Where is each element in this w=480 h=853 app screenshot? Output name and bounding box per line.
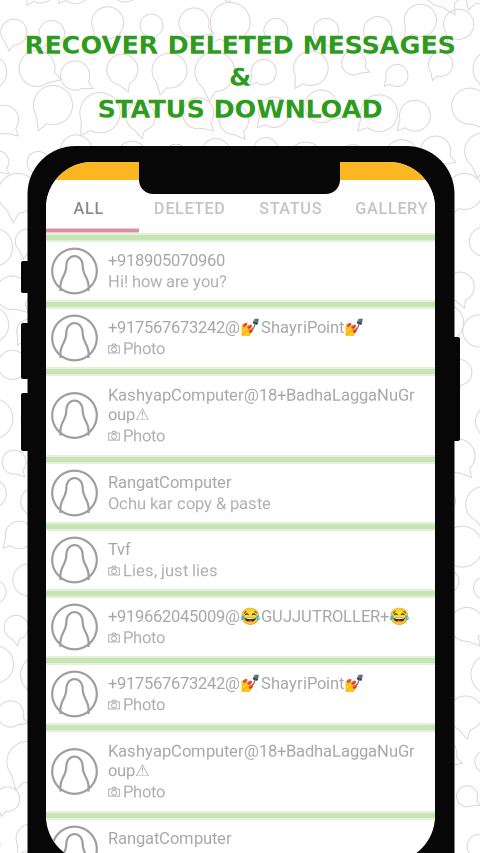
button[interactable]: DELETED	[139, 182, 240, 235]
staticText: Photo	[123, 695, 165, 714]
staticText: STATUS DOWNLOAD	[97, 94, 382, 124]
staticText: Photo	[123, 782, 165, 802]
staticText: Tvf	[108, 540, 131, 559]
staticText: KashyapComputer@18+BadhaLaggaNuGr oup⚠	[108, 385, 415, 424]
staticText: DELETED	[154, 199, 225, 218]
button[interactable]: +917567673242@💅ShayriPoint💅	[46, 665, 435, 732]
staticText: RangatComputer	[108, 473, 232, 492]
button[interactable]: +918905070960	[46, 242, 435, 309]
button[interactable]: KashyapComputer@18+BadhaLaggaNuGr oup⚠	[46, 376, 435, 464]
staticText: +918905070960	[108, 251, 225, 270]
staticText: RECOVER DELETED MESSAGES	[24, 30, 455, 60]
button[interactable]: RangatComputer	[46, 820, 435, 853]
staticText: Photo	[123, 628, 165, 647]
button[interactable]: KashyapComputer@18+BadhaLaggaNuGr oup⚠	[46, 732, 435, 820]
staticText: Photo	[123, 339, 165, 358]
staticText: +917567673242@💅ShayriPoint💅	[108, 318, 365, 337]
staticText: +919662045009@😂GUJJUTROLLER+😂	[108, 607, 410, 626]
button[interactable]: Tvf	[46, 531, 435, 598]
button[interactable]: +917567673242@💅ShayriPoint💅	[46, 309, 435, 376]
button[interactable]: RangatComputer	[46, 464, 435, 531]
staticText: KashyapComputer@18+BadhaLaggaNuGr oup⚠	[108, 741, 415, 780]
button[interactable]: ALL	[38, 182, 139, 235]
staticText: Photo	[123, 426, 165, 446]
staticText: GALLERY	[355, 199, 428, 218]
staticText: ALL	[73, 199, 104, 218]
staticText: RangatComputer	[108, 829, 232, 848]
staticText: Lies, just lies	[123, 561, 218, 580]
staticText: Ochu kar copy & paste	[108, 494, 271, 513]
button[interactable]: +919662045009@😂GUJJUTROLLER+😂	[46, 598, 435, 665]
staticText: Hi! how are you?	[108, 272, 227, 291]
staticText: +917567673242@💅ShayriPoint💅	[108, 674, 365, 693]
staticText: &	[229, 62, 251, 92]
button[interactable]: GALLERY	[341, 182, 442, 235]
staticText: STATUS	[259, 199, 322, 218]
button[interactable]: STATUS	[240, 182, 341, 235]
